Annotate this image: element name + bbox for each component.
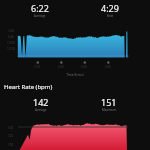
button[interactable]: 4:29 <box>84 2 136 18</box>
staticText: 4:29 <box>101 2 119 14</box>
staticText: 142 <box>33 96 49 108</box>
staticText: 100 <box>8 143 14 147</box>
staticText: 10:00 <box>7 41 15 45</box>
staticText: 0:40 <box>105 65 111 69</box>
button[interactable]: Heart Rate (bpm) <box>4 83 53 91</box>
staticText: 0:10 <box>34 65 40 69</box>
staticText: Average <box>35 108 47 112</box>
staticText: 0:30 <box>81 65 87 69</box>
staticText: 120 <box>8 134 14 138</box>
button[interactable]: 151 <box>83 96 135 112</box>
staticText: Heart Rate (bpm) <box>4 83 53 91</box>
staticText: 6:22 <box>31 2 49 14</box>
staticText: 6:40 <box>8 35 14 39</box>
staticText: 140 <box>8 126 14 130</box>
staticText: Average <box>34 14 46 18</box>
staticText: 13:20 <box>7 47 15 51</box>
staticText: Maximum <box>102 108 117 112</box>
staticText: Best <box>107 14 114 18</box>
staticText: 0:20 <box>58 65 64 69</box>
staticText: 3:20 <box>8 29 14 33</box>
button[interactable]: 6:22 <box>14 2 66 18</box>
button[interactable]: 142 <box>15 96 67 112</box>
staticText: Time (h:m:s) <box>0 73 150 77</box>
staticText: 151 <box>101 96 117 108</box>
